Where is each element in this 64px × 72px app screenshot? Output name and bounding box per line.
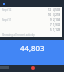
staticText: 10 bbox=[48, 13, 52, 17]
staticText: 9 bbox=[50, 18, 52, 22]
staticText: 2,104 bbox=[53, 18, 61, 22]
staticText: 44,803 bbox=[20, 43, 45, 54]
staticText: Showing all recent activity bbox=[2, 33, 35, 37]
button[interactable]: Sept 11 bbox=[0, 17, 64, 22]
button[interactable]: 7 bbox=[0, 22, 64, 27]
button[interactable]: 10 bbox=[0, 12, 64, 17]
button[interactable]: Sept 12 bbox=[0, 7, 64, 12]
staticText: 12 bbox=[48, 8, 52, 12]
staticText: Sept 12 bbox=[2, 8, 12, 12]
staticText: 1,932 bbox=[53, 23, 61, 27]
staticText: 3,218 bbox=[53, 13, 61, 17]
staticText: 7 bbox=[50, 23, 52, 27]
button[interactable]: Record bbox=[31, 66, 35, 70]
staticText: Sept 11 bbox=[2, 18, 12, 22]
staticText: 5 bbox=[50, 28, 52, 32]
staticText: 1,128 bbox=[53, 28, 61, 32]
staticText: 4,503 bbox=[53, 8, 61, 12]
button[interactable]: 5 bbox=[0, 27, 64, 32]
